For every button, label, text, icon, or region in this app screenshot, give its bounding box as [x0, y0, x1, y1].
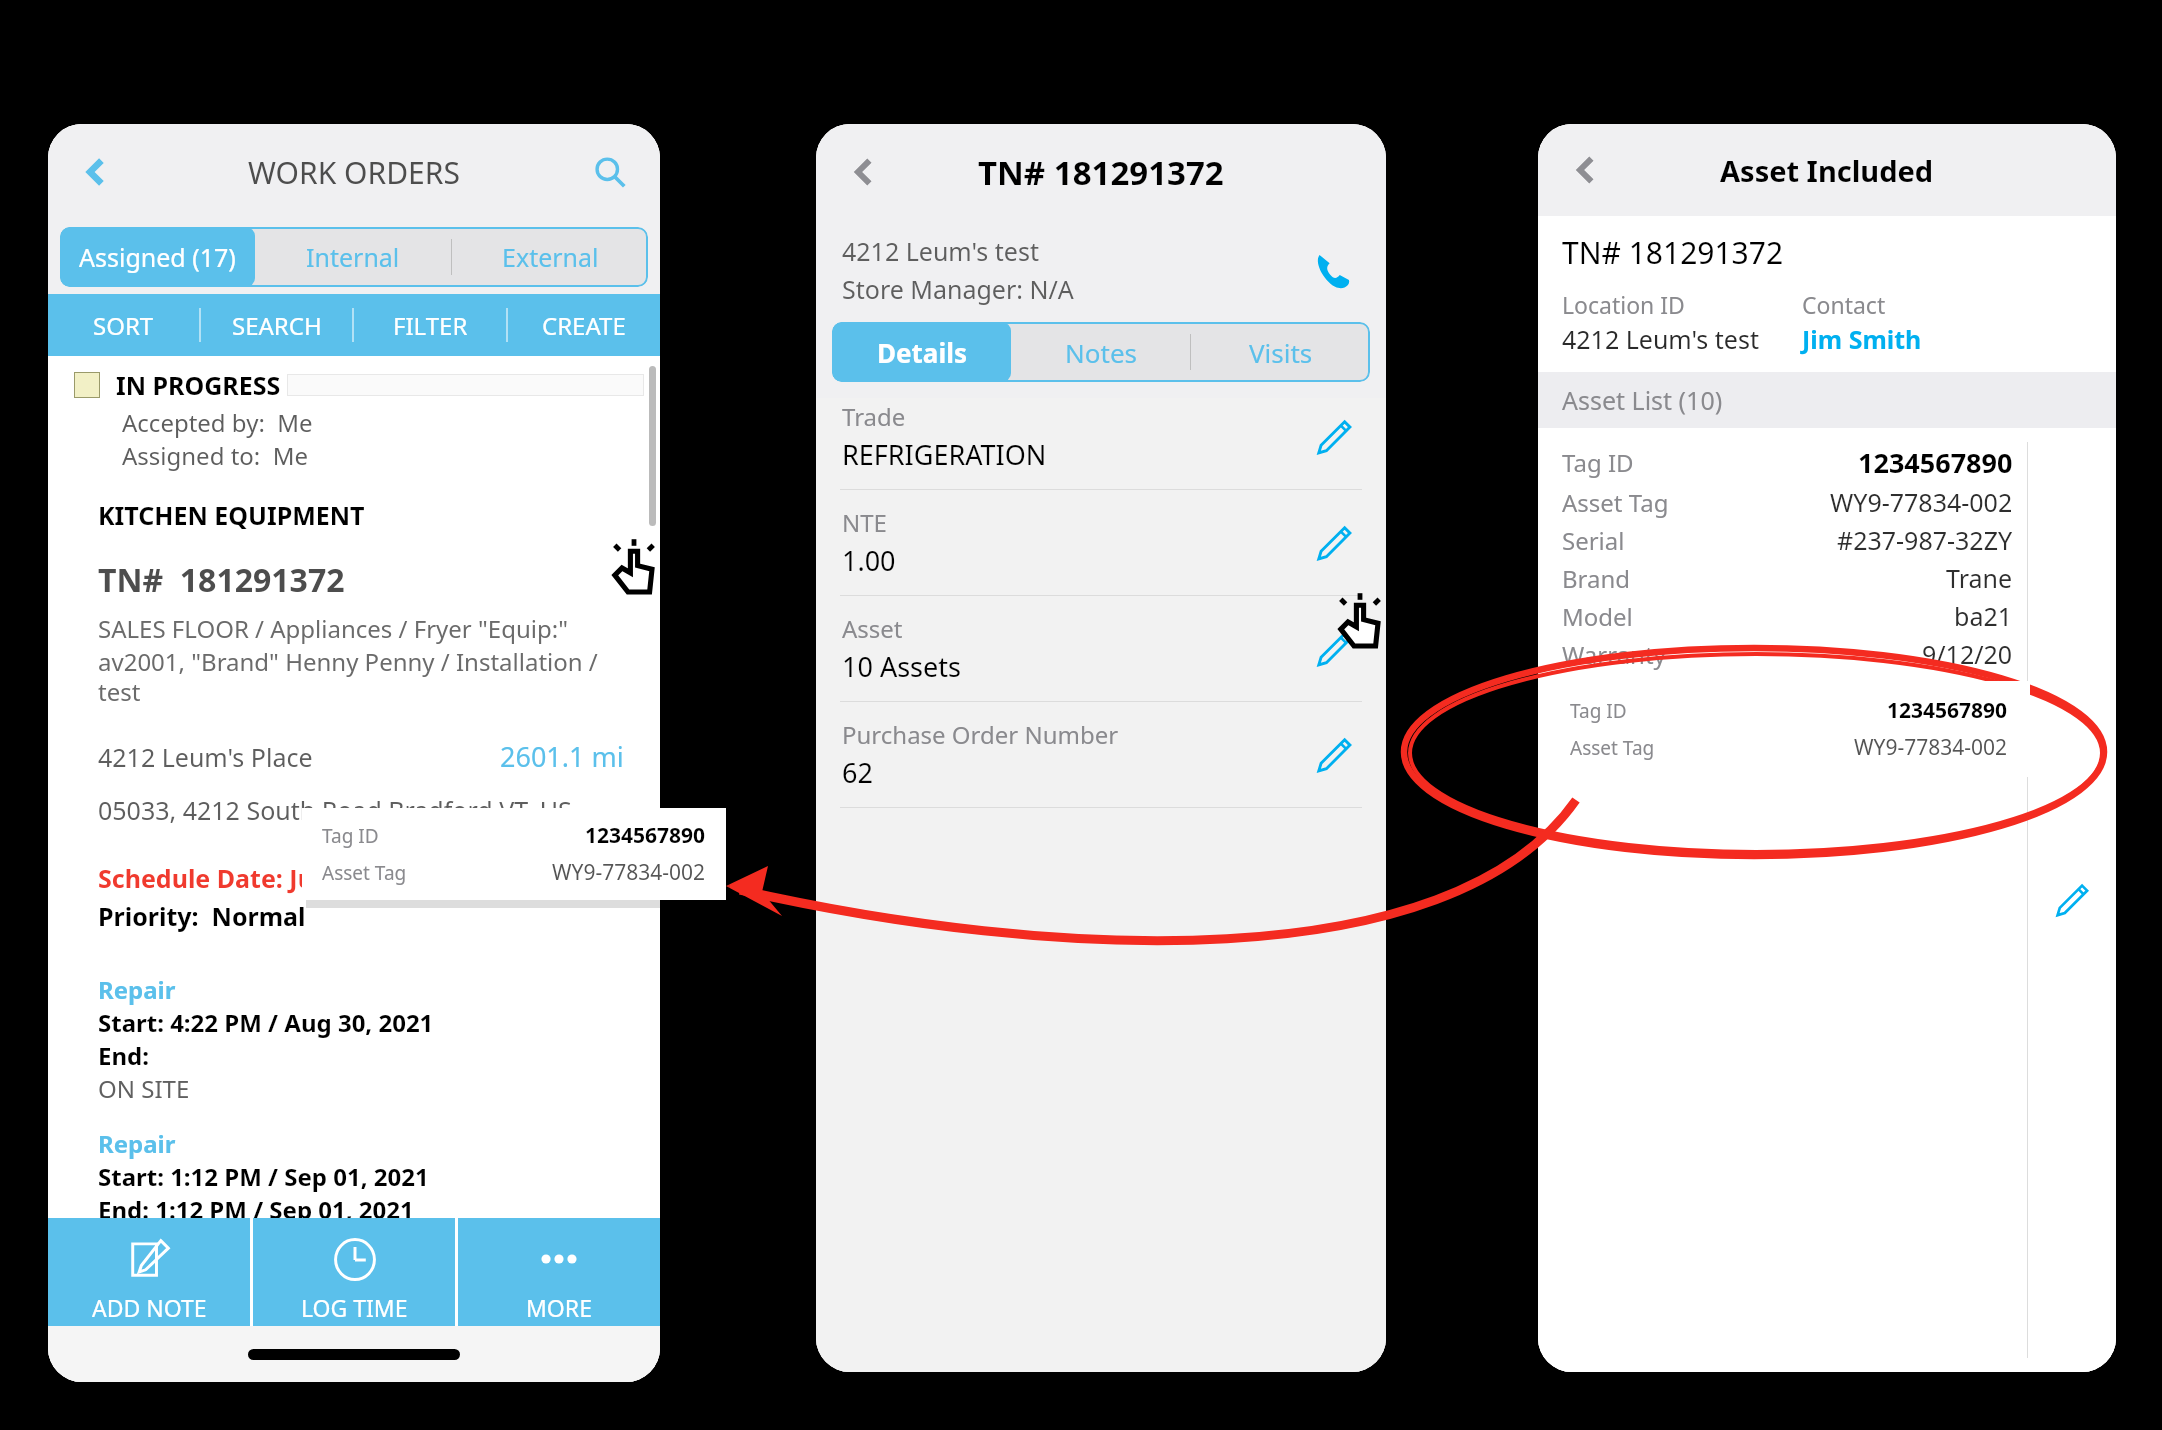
staticText: NTE — [842, 506, 887, 539]
button[interactable]: ADD NOTE — [48, 1218, 250, 1326]
staticText: 1.00 — [842, 542, 896, 579]
staticText: Serial — [1562, 524, 1625, 557]
staticText: Priority: Normal — [98, 899, 306, 933]
button[interactable]: Jim Smith — [1802, 322, 1922, 356]
staticText: 05033, 4212 South Road Bradford VT, US — [98, 793, 572, 827]
staticText: WY9-77834-002 — [1830, 485, 2013, 519]
button[interactable]: Edit asset — [2046, 874, 2098, 926]
staticText: Asset Tag — [1562, 486, 1669, 519]
button[interactable]: Edit Asset — [1308, 623, 1360, 675]
staticText: CREATE — [542, 309, 626, 342]
staticText: Notes — [1065, 335, 1137, 370]
button[interactable]: LOG TIME — [253, 1218, 455, 1326]
staticText: Brand — [1562, 562, 1631, 595]
staticText: Repair — [98, 1127, 176, 1160]
button[interactable]: SORT — [48, 294, 199, 356]
staticText: 1234567890 — [1887, 696, 2008, 725]
button[interactable]: Search — [582, 144, 638, 200]
staticText: TN# 181291372 — [98, 558, 345, 602]
staticText: 62 — [842, 754, 873, 791]
staticText: 4212 Leum's test — [1562, 322, 1759, 356]
staticText: Location ID — [1562, 289, 1685, 320]
button[interactable]: Details — [832, 322, 1011, 382]
staticText: Model — [1562, 600, 1633, 633]
staticText: SEARCH — [232, 309, 322, 342]
staticText: 4212 Leum's test — [842, 234, 1039, 268]
button[interactable]: Internal — [255, 227, 451, 287]
staticText: Details — [877, 335, 967, 370]
staticText: Trane — [1946, 561, 2013, 595]
staticText: SALES FLOOR / Appliances / Fryer "Equip:… — [98, 612, 568, 645]
button[interactable]: Edit Trade — [1308, 411, 1360, 463]
staticText: Asset Tag — [322, 860, 407, 886]
button[interactable]: External — [452, 227, 648, 287]
staticText: Schedule Date: Jun 24, 2021 at 9:40 AM — [98, 861, 573, 895]
button[interactable]: Edit Purchase Order Number — [1308, 729, 1360, 781]
staticText: ADD NOTE — [92, 1292, 207, 1323]
button[interactable]: NTE — [816, 490, 1386, 596]
staticText: MORE — [526, 1292, 592, 1323]
staticText: SORT — [93, 309, 154, 342]
button[interactable]: Edit NTE — [1308, 517, 1360, 569]
button[interactable]: Trade — [816, 398, 1386, 490]
staticText: av2001, "Brand" Henny Penny / Installati… — [98, 645, 644, 708]
staticText: Repair — [98, 973, 176, 1006]
staticText: FILTER — [393, 309, 468, 342]
button[interactable]: Tag ID — [1538, 428, 2116, 1372]
staticText: 1234567890 — [1858, 444, 2013, 481]
staticText: Tag ID — [1562, 446, 1634, 479]
staticText: Leak Record — [1562, 676, 1700, 709]
staticText: End: — [98, 1039, 149, 1072]
button[interactable]: Assigned (17) — [60, 227, 255, 287]
staticText: TN# 181291372 — [1562, 232, 1784, 273]
staticText: Asset Tag — [1570, 735, 1655, 761]
staticText: WORK ORDERS — [248, 152, 460, 193]
staticText: Store Manager: N/A — [842, 272, 1074, 306]
button[interactable]: Back — [836, 144, 892, 200]
button[interactable]: Call — [1306, 243, 1360, 297]
staticText: Warranty — [1562, 638, 1666, 671]
staticText: Start: 4:22 PM / Aug 30, 2021 — [98, 1006, 434, 1039]
button[interactable]: FILTER — [354, 294, 506, 356]
staticText: 9/12/20 — [1922, 637, 2013, 671]
staticText: External — [502, 240, 599, 274]
staticText: Visits — [1249, 335, 1313, 370]
staticText: #237-987-32ZY — [1837, 523, 2013, 557]
staticText: WY9-77834-002 — [552, 858, 706, 887]
staticText: Accepted by: Me — [122, 406, 313, 439]
staticText: KITCHEN EQUIPMENT — [98, 498, 365, 532]
staticText: Contact — [1802, 289, 1886, 320]
staticText: Tag ID — [1570, 698, 1627, 724]
staticText: Open — [1948, 675, 2013, 709]
staticText: ba21 — [1954, 599, 2013, 633]
staticText: Trade — [842, 400, 906, 433]
staticText: Asset Included — [1720, 151, 1934, 190]
staticText: Purchase Order Number — [842, 718, 1119, 751]
staticText: REFRIGERATION — [842, 436, 1047, 473]
staticText: Internal — [306, 240, 400, 274]
button[interactable]: Purchase Order Number — [816, 702, 1386, 808]
button[interactable]: SEARCH — [201, 294, 352, 356]
staticText: Asset — [842, 612, 903, 645]
button[interactable]: Back — [68, 144, 124, 200]
staticText: Tag ID — [322, 823, 379, 849]
staticText: Asset List (10) — [1562, 383, 1723, 417]
staticText: Assigned to: Me — [122, 439, 309, 472]
staticText: Start: 1:12 PM / Sep 01, 2021 — [98, 1160, 429, 1193]
staticText: 2601.1 mi — [500, 738, 624, 775]
staticText: WY9-77834-002 — [1854, 733, 2008, 762]
button[interactable]: Notes — [1011, 322, 1190, 382]
staticText: ON SITE — [98, 1072, 190, 1105]
staticText: Assigned (17) — [79, 240, 236, 274]
staticText: 4212 Leum's Place — [98, 740, 313, 774]
staticText: 10 Assets — [842, 648, 961, 685]
button[interactable]: MORE — [458, 1218, 660, 1326]
button[interactable]: Asset — [816, 596, 1386, 702]
staticText: LOG TIME — [301, 1292, 408, 1323]
button[interactable]: Visits — [1191, 322, 1370, 382]
button[interactable]: CREATE — [508, 294, 660, 356]
staticText: IN PROGRESS — [116, 368, 281, 402]
button[interactable]: Back — [1558, 142, 1614, 198]
staticText: End: 1:12 PM / Sep 01, 2021 — [98, 1193, 414, 1218]
staticText: 1234567890 — [585, 821, 706, 850]
